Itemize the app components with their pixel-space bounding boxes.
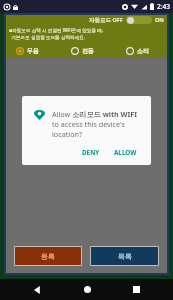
staticText: 무음 [27, 47, 39, 55]
button[interactable]: 자동모드 전환 [126, 16, 152, 24]
staticText: 소리 [137, 47, 149, 55]
staticText: ▪자동모드 선택 시 연결된 WiFi존에 있었을 때, [9, 27, 104, 33]
button[interactable]: 진동 [59, 47, 114, 55]
staticText: 2:43 [157, 2, 170, 11]
button[interactable]: Recents [123, 279, 149, 300]
staticText: 자동모드 OFF [89, 16, 123, 24]
staticText: ALLOW [114, 148, 137, 157]
button[interactable]: ALLOW [110, 145, 141, 160]
button[interactable]: 등록 [14, 246, 82, 266]
staticText: 기본으로 설정할 모드를 선택하세요. [9, 34, 86, 40]
staticText: 등록 [41, 252, 55, 261]
staticText: ON [155, 16, 164, 23]
button[interactable]: 무음 [4, 47, 59, 55]
staticText: Allow 소리모드 with WIFI to access this devi… [52, 109, 141, 139]
staticText: DENY [82, 148, 100, 157]
button[interactable]: DENY [78, 145, 104, 160]
button[interactable]: Home [74, 279, 100, 300]
staticText: 목록 [118, 252, 132, 261]
button[interactable]: 소리 [114, 47, 169, 55]
staticText: 진동 [82, 47, 94, 55]
button[interactable]: Back [24, 279, 50, 300]
button[interactable]: 목록 [90, 246, 159, 266]
